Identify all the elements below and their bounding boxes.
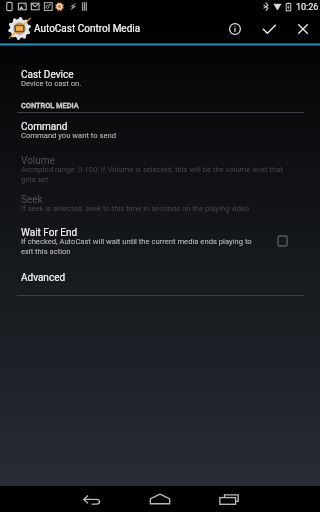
staticText: If checked, AutoCast will wait until the… <box>21 237 257 256</box>
button[interactable]: Command <box>0 123 320 144</box>
button[interactable]: Advanced <box>0 274 320 286</box>
button[interactable]: Home <box>128 486 192 512</box>
staticText: Command <box>21 121 68 133</box>
staticText: If seek is selected, seek to this time i… <box>21 204 250 213</box>
button[interactable]: Back <box>60 486 124 512</box>
button[interactable]: Save <box>252 14 286 43</box>
staticText: Volume <box>21 155 55 167</box>
staticText: Command you want to send <box>21 131 117 140</box>
button[interactable]: Volume <box>0 157 320 188</box>
staticText: 10:26 <box>296 2 319 13</box>
staticText: Advanced <box>21 272 66 284</box>
staticText: Accepted range: 0-100; If Volume is sele… <box>21 165 287 184</box>
button[interactable]: Cast Device <box>0 71 320 92</box>
staticText: Device to cast on. <box>21 79 82 88</box>
staticText: Wait For End <box>21 227 78 239</box>
button[interactable]: Wait For End <box>0 229 320 260</box>
staticText: CONTROL MEDIA <box>21 101 79 110</box>
button[interactable]: Seek <box>0 196 320 217</box>
staticText: AutoCast Control Media <box>34 23 141 35</box>
staticText: Cast Device <box>21 69 74 81</box>
button[interactable]: Recents <box>197 486 261 512</box>
button[interactable]: Cancel <box>286 14 320 43</box>
staticText: Seek <box>21 194 43 206</box>
button[interactable]: Help <box>218 14 252 43</box>
button[interactable]: AutoCast Control Media <box>0 17 147 40</box>
